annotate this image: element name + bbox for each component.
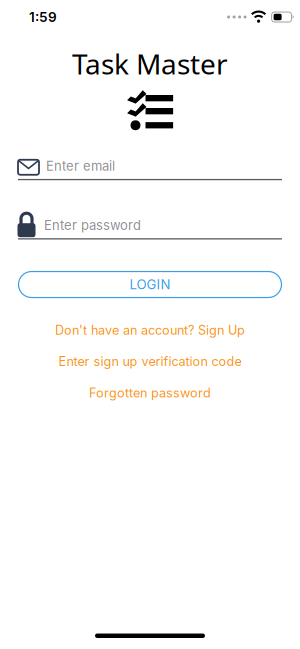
staticText: LOGIN xyxy=(129,276,170,292)
staticText: 1:59 xyxy=(29,9,57,25)
staticText: Don't have an account? Sign Up xyxy=(55,322,245,338)
button[interactable]: Enter email xyxy=(0,158,300,180)
button[interactable]: Enter password xyxy=(0,213,300,239)
staticText: Forgotten password xyxy=(89,385,211,400)
button[interactable]: LOGIN xyxy=(0,271,300,297)
staticText: Enter sign up verification code xyxy=(58,354,241,369)
staticText: Task Master xyxy=(72,45,228,82)
button[interactable]: Forgotten password xyxy=(89,385,211,400)
button[interactable]: Don't have an account? Sign Up xyxy=(55,322,245,338)
button[interactable]: Enter sign up verification code xyxy=(58,354,241,369)
staticText: Enter email xyxy=(46,158,115,174)
staticText: Enter password xyxy=(44,217,141,233)
